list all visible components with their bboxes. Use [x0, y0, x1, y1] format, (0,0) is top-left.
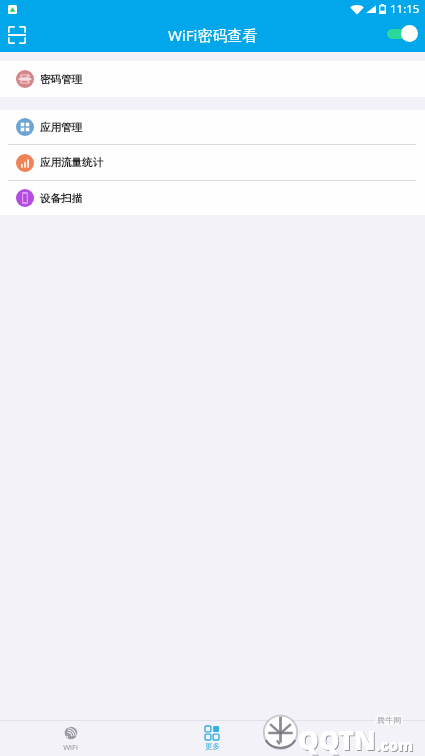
staticText: .com	[376, 735, 413, 755]
button[interactable]: 应用管理	[0, 110, 425, 144]
staticText: QQTN	[298, 722, 376, 756]
button[interactable]: Scan QR code	[8, 26, 26, 44]
staticText: 腾牛网	[377, 715, 401, 725]
staticText: WiFi密码查看	[168, 25, 258, 45]
staticText: 应用流量统计	[40, 156, 103, 169]
staticText: WiFi	[63, 742, 78, 752]
button[interactable]: 设备扫描	[0, 181, 425, 215]
button[interactable]: 更多	[141, 721, 283, 756]
staticText: 11:15	[390, 1, 420, 17]
staticText: 应用管理	[40, 121, 82, 134]
staticText: 更多	[205, 742, 220, 751]
staticText: .com	[377, 736, 414, 756]
button[interactable]: WiFi	[0, 721, 141, 756]
button[interactable]: 应用流量统计	[0, 145, 425, 180]
button[interactable]: WiFi toggle	[383, 24, 419, 43]
button[interactable]: 密码管理	[0, 61, 425, 97]
staticText: 密码管理	[40, 73, 82, 86]
staticText: 设备扫描	[40, 192, 82, 205]
staticText: QQTN	[299, 723, 377, 756]
